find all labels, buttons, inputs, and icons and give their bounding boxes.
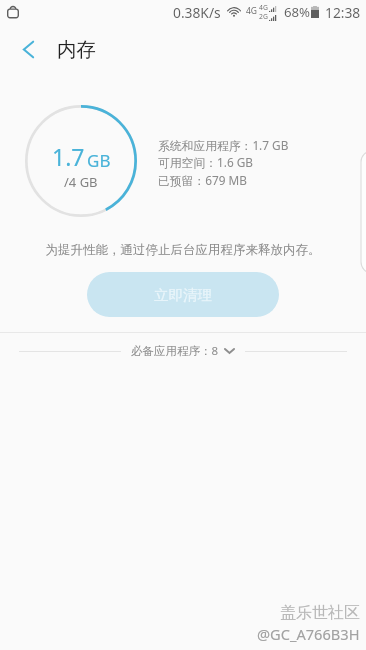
staticText: 为提升性能，通过停止后台应用程序来释放内存。 <box>24 242 342 258</box>
staticText: 系统和应用程序：1.7 GB 可用空间：1.6 GB 已预留：679 MB <box>158 137 289 189</box>
staticText: 立即清理 <box>154 286 212 304</box>
staticText: @GC_A766B3H <box>257 624 360 644</box>
button[interactable]: 必备应用程序：8 <box>19 343 347 359</box>
button[interactable]: 立即清理 <box>87 272 279 317</box>
staticText: 2G <box>259 12 268 21</box>
staticText: /4 GB <box>64 173 98 191</box>
staticText: 盖乐世社区 <box>280 603 360 623</box>
staticText: 4G <box>259 3 268 12</box>
staticText: 内存 <box>57 37 96 62</box>
staticText: GB <box>87 149 111 172</box>
staticText: 68% <box>284 3 311 21</box>
staticText: 0.38K/s <box>173 3 221 22</box>
staticText: 必备应用程序：8 <box>131 343 219 359</box>
staticText: 1.7 <box>52 141 85 172</box>
button[interactable]: Back <box>6 27 50 71</box>
staticText: 4G <box>246 5 258 17</box>
staticText: 12:38 <box>325 3 361 22</box>
